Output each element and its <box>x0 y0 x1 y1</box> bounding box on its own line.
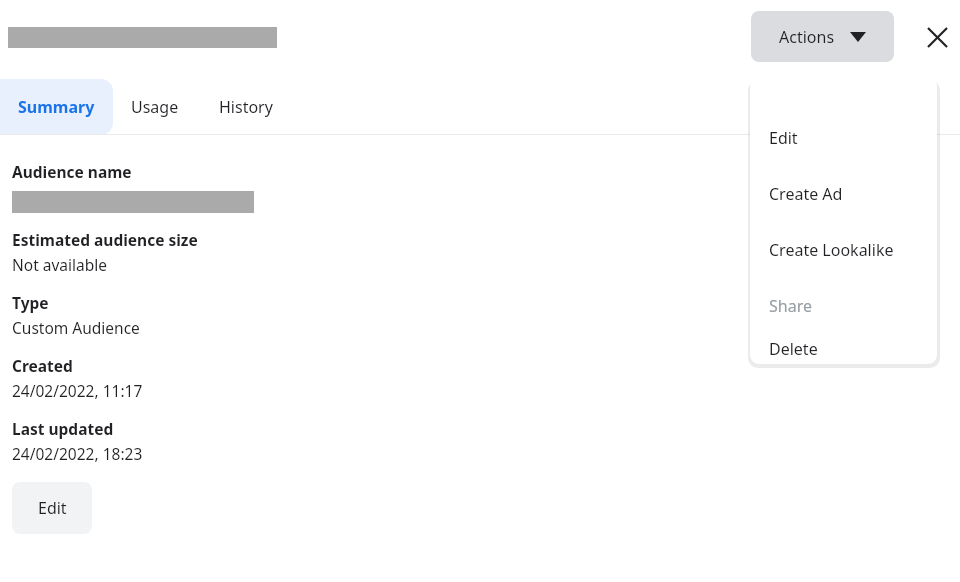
staticText: Created <box>12 355 73 376</box>
button[interactable]: Delete <box>750 334 937 364</box>
staticText: Audience name <box>12 161 132 182</box>
staticText: Estimated audience size <box>12 229 198 250</box>
button[interactable]: Create Lookalike <box>750 222 937 278</box>
staticText: 24/02/2022, 18:23 <box>12 443 143 464</box>
staticText: 24/02/2022, 11:17 <box>12 380 143 401</box>
button[interactable]: History <box>196 79 296 135</box>
staticText: Not available <box>12 254 108 275</box>
button[interactable]: Actions <box>751 11 894 62</box>
staticText: Actions <box>779 26 835 48</box>
staticText: Last updated <box>12 418 114 439</box>
button[interactable]: Create Ad <box>750 166 937 222</box>
staticText: Edit <box>38 497 67 519</box>
staticText: Type <box>12 292 49 313</box>
staticText: Create Ad <box>769 183 843 205</box>
button[interactable]: Summary <box>0 79 113 135</box>
button[interactable]: Edit <box>750 110 937 166</box>
button[interactable]: Usage <box>113 79 196 135</box>
button[interactable]: Share <box>750 278 937 334</box>
staticText: Delete <box>769 338 818 360</box>
staticText: Summary <box>18 96 95 118</box>
staticText: History <box>219 96 273 118</box>
staticText: Edit <box>769 127 798 149</box>
staticText: Usage <box>131 96 179 118</box>
button[interactable]: Close <box>913 13 960 61</box>
staticText: Share <box>769 295 812 317</box>
staticText: Custom Audience <box>12 317 140 338</box>
button[interactable]: Edit <box>12 482 92 534</box>
staticText: Create Lookalike <box>769 239 894 261</box>
